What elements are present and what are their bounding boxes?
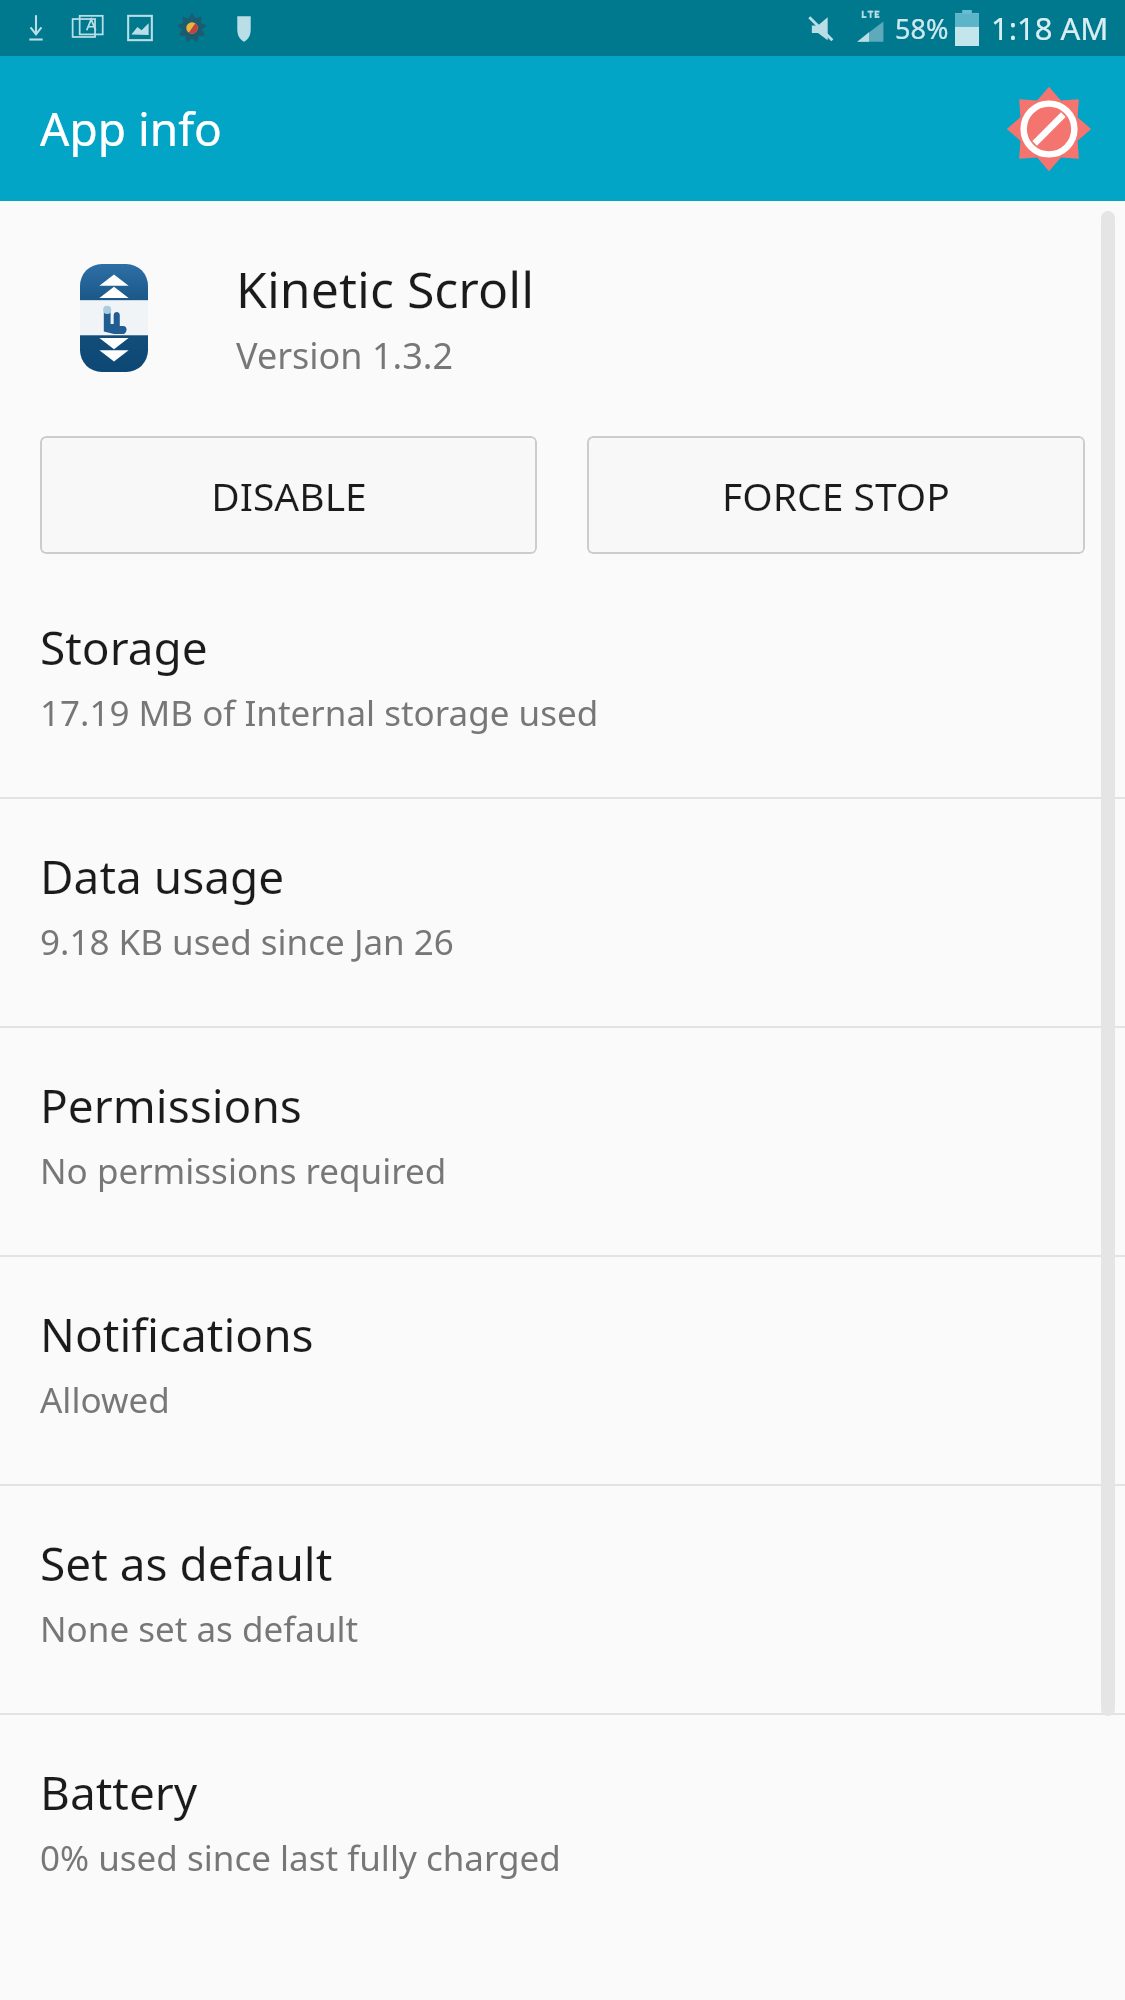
staticText: Permissions <box>40 1074 302 1137</box>
button[interactable]: Permissions <box>0 1028 1125 1255</box>
staticText: None set as default <box>40 1605 359 1653</box>
staticText: Set as default <box>40 1532 333 1595</box>
staticText: 0% used since last fully charged <box>40 1834 561 1882</box>
staticText: 58% <box>895 10 949 47</box>
button[interactable]: Set as default <box>0 1486 1125 1713</box>
staticText: Version 1.3.2 <box>236 331 454 380</box>
staticText: Data usage <box>40 845 285 908</box>
staticText: FORCE STOP <box>722 469 950 522</box>
staticText: 17.19 MB of Internal storage used <box>40 689 599 737</box>
staticText: Allowed <box>40 1376 170 1424</box>
button[interactable]: Notifications <box>0 1257 1125 1484</box>
staticText: Kinetic Scroll <box>236 255 535 323</box>
staticText: DISABLE <box>211 469 367 522</box>
button[interactable]: FORCE STOP <box>587 436 1085 554</box>
staticText: 1:18 AM <box>991 7 1109 49</box>
button[interactable]: DISABLE <box>40 436 537 554</box>
staticText: No permissions required <box>40 1147 447 1195</box>
button[interactable]: Storage <box>0 596 1125 797</box>
staticText: Storage <box>40 616 208 679</box>
button[interactable]: Battery <box>0 1715 1125 1922</box>
staticText: App info <box>40 97 222 160</box>
staticText: Notifications <box>40 1303 314 1366</box>
button[interactable]: Block app <box>1001 81 1097 177</box>
button[interactable]: Data usage <box>0 799 1125 1026</box>
staticText: 9.18 KB used since Jan 26 <box>40 918 454 966</box>
staticText: Battery <box>40 1761 198 1824</box>
